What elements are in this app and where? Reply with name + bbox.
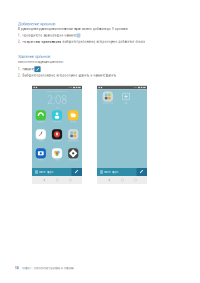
staticText: Телефон — [37, 121, 44, 123]
staticText: 2:08 — [47, 92, 67, 107]
staticText: 10 — [15, 266, 19, 270]
button[interactable]: Телефон — [33, 110, 49, 123]
staticText: More apps — [104, 170, 118, 174]
button[interactable]: More apps — [32, 168, 82, 176]
staticText: 1. — [18, 67, 21, 71]
staticText: Калькулятор — [68, 140, 79, 142]
staticText: Глава 1. Основные приемы и навыки — [22, 266, 74, 270]
button[interactable]: Настройки — [65, 148, 81, 161]
staticText: ВОСКРЕСЕНЬЕ, 28 АВГУСТА — [47, 90, 67, 92]
staticText: Погода — [70, 121, 76, 123]
staticText: Удаление ярлыков — [18, 54, 50, 59]
staticText: Проведите по экрану вверх и нажмите — [22, 34, 75, 37]
staticText: Добавление ярлыков — [18, 21, 55, 26]
staticText: Камера — [38, 159, 44, 161]
staticText: Контакты — [53, 121, 61, 123]
staticText: 2. — [18, 74, 21, 77]
staticText: More apps — [39, 170, 53, 174]
staticText: 1. — [18, 34, 21, 37]
button[interactable]: Часы — [33, 129, 49, 142]
staticText: 2. — [18, 40, 21, 43]
staticText: Часы — [39, 140, 43, 142]
staticText: На экране Все приложения выберите прилож… — [22, 40, 145, 43]
button[interactable]: Погода — [65, 110, 81, 123]
button[interactable]: Диктофон — [49, 129, 65, 142]
staticText: Нажмите — [22, 67, 33, 71]
button[interactable]: Доб. — [118, 91, 134, 104]
button[interactable]: Темы — [49, 148, 65, 161]
button[interactable]: Контакты — [49, 110, 65, 123]
staticText: 12:08 — [133, 87, 137, 88]
staticText: В руководстве руководства на главный экр… — [18, 27, 128, 31]
staticText: Темы — [55, 159, 59, 161]
button[interactable]: Калькулятор — [100, 91, 116, 104]
button[interactable]: Камера — [33, 148, 49, 161]
staticText: Выполните следующие действия: — [18, 60, 64, 63]
button[interactable]: More apps — [97, 168, 147, 176]
staticText: Выберите приложение, которое нужно удали… — [22, 74, 116, 77]
staticText: Диктофон — [53, 140, 61, 142]
staticText: 12:08 — [68, 87, 72, 88]
staticText: Доб. — [124, 102, 127, 104]
staticText: Настройки — [69, 159, 78, 161]
button[interactable]: Калькулятор — [65, 129, 81, 142]
